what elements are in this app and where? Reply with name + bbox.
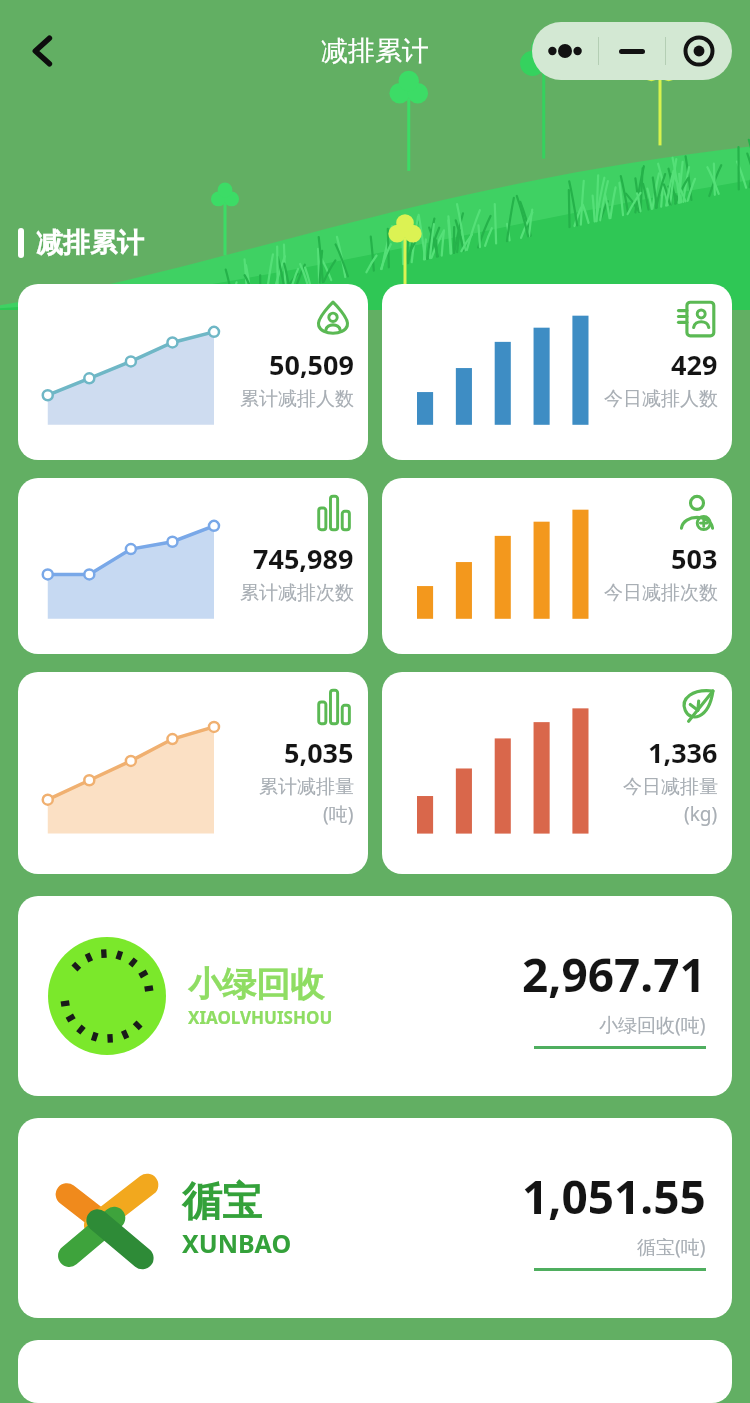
staticText: 今日减排量 — [623, 775, 718, 799]
staticText: 小绿回收(吨) — [599, 1012, 706, 1038]
staticText: 累计减排次数 — [240, 581, 354, 605]
staticText: 小绿回收 — [188, 963, 324, 1006]
staticText: 429 — [671, 346, 718, 383]
button[interactable]: 小绿回收 — [18, 896, 732, 1096]
button[interactable]: 745,989 — [18, 478, 368, 654]
button[interactable]: 429 — [382, 284, 732, 460]
staticText: 减排累计 — [321, 34, 429, 68]
button[interactable]: 50,509 — [18, 284, 368, 460]
button[interactable]: Minimize — [599, 22, 665, 80]
button[interactable]: 5,035 — [18, 672, 368, 874]
staticText: XIAOLVHUISHOU — [188, 1006, 333, 1029]
staticText: 5,035 — [284, 734, 354, 771]
staticText: (kg) — [684, 801, 718, 827]
staticText: 循宝 — [182, 1176, 262, 1226]
staticText: (吨) — [323, 801, 354, 827]
staticText: 1,051.55 — [522, 1165, 706, 1228]
staticText: 累计减排量 — [259, 775, 354, 799]
button[interactable]: Back — [14, 22, 72, 80]
staticText: 减排累计 — [36, 226, 144, 260]
staticText: 745,989 — [253, 540, 354, 577]
staticText: 2,967.71 — [522, 943, 706, 1006]
staticText: 今日减排次数 — [604, 581, 718, 605]
staticText: 503 — [671, 540, 718, 577]
button[interactable]: More — [532, 22, 598, 80]
button[interactable]: Close — [666, 22, 732, 80]
button[interactable]: 1,336 — [382, 672, 732, 874]
button[interactable]: 503 — [382, 478, 732, 654]
staticText: 循宝(吨) — [637, 1234, 706, 1260]
staticText: 50,509 — [269, 346, 354, 383]
staticText: 累计减排人数 — [240, 387, 354, 411]
staticText: 1,336 — [648, 734, 718, 771]
staticText: XUNBAO — [182, 1226, 292, 1260]
button[interactable]: 循宝 — [18, 1118, 732, 1318]
button[interactable] — [18, 1340, 732, 1403]
staticText: 今日减排人数 — [604, 387, 718, 411]
